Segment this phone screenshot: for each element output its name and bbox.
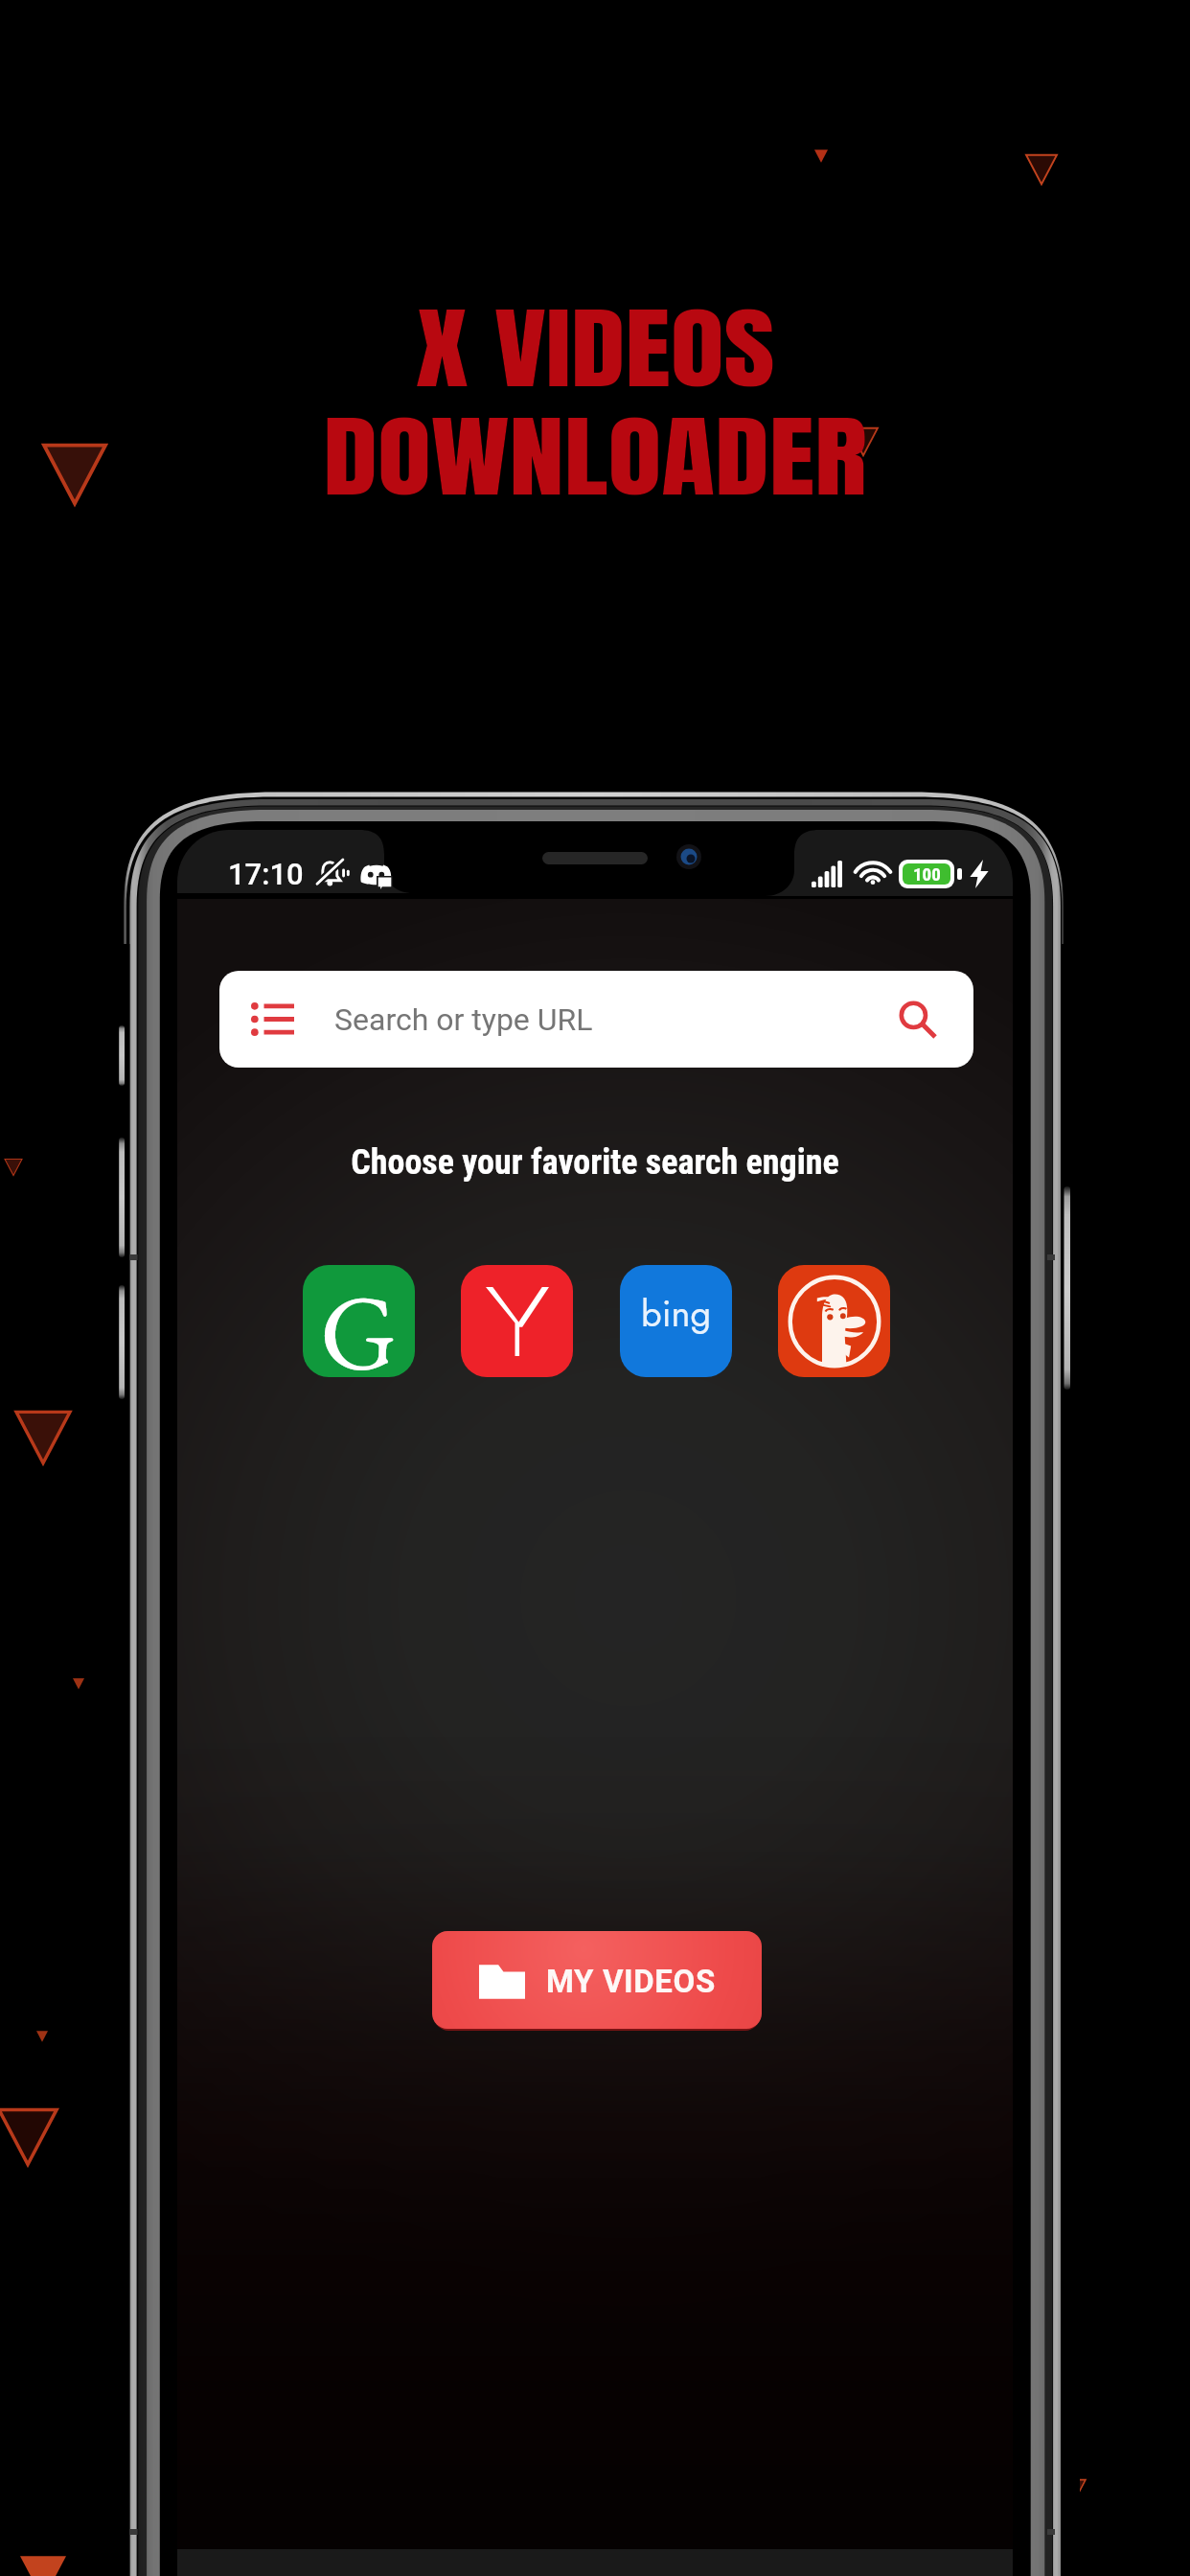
button[interactable]: Bing <box>620 1265 732 1377</box>
button[interactable]: MY VIDEOS <box>432 1931 762 2031</box>
button[interactable]: Google <box>303 1265 415 1377</box>
staticText: bing <box>641 1287 712 1340</box>
staticText: 100 <box>913 863 941 885</box>
staticText: X VIDEOS <box>415 282 775 416</box>
staticText: G <box>320 1265 398 1374</box>
staticText: 17:10 <box>228 857 304 891</box>
button[interactable]: Search or type URL <box>219 971 973 1068</box>
staticText: Search or type URL <box>334 1001 593 1038</box>
button[interactable]: DuckDuckGo <box>778 1265 890 1377</box>
staticText: MY VIDEOS <box>546 1963 716 2000</box>
button[interactable]: Yandex <box>461 1265 573 1377</box>
staticText: Choose your favorite search engine <box>351 1142 839 1183</box>
staticText: DOWNLOADER <box>323 390 867 524</box>
